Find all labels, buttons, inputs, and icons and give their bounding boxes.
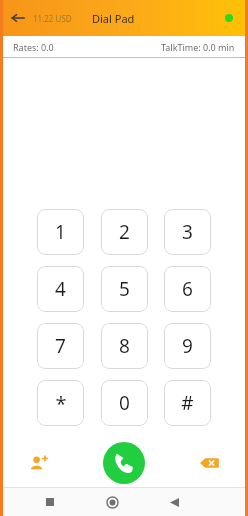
staticText: 0 xyxy=(119,390,130,416)
button[interactable]: 7 xyxy=(37,323,84,369)
button[interactable]: 9 xyxy=(164,323,211,369)
staticText: # xyxy=(181,390,194,416)
button[interactable]: Recents xyxy=(37,489,63,515)
staticText: 4 xyxy=(55,276,66,302)
button[interactable]: 0 xyxy=(101,380,148,426)
staticText: 5 xyxy=(119,276,130,302)
staticText: 6 xyxy=(182,276,193,302)
staticText: * xyxy=(55,390,67,417)
button[interactable]: 2 xyxy=(101,209,148,255)
button[interactable]: Back xyxy=(3,3,33,33)
staticText: 2 xyxy=(119,219,130,245)
button[interactable]: 5 xyxy=(101,266,148,312)
staticText: 7 xyxy=(55,333,66,359)
button[interactable]: Backspace xyxy=(189,442,231,484)
staticText: 3 xyxy=(182,219,193,245)
staticText: Rates: 0.0 xyxy=(13,41,54,53)
staticText: 11.22 USD xyxy=(33,13,72,24)
staticText: 1 xyxy=(55,219,66,245)
staticText: 8 xyxy=(119,333,130,359)
button[interactable]: 8 xyxy=(101,323,148,369)
button[interactable]: Call xyxy=(103,442,145,484)
button[interactable]: Connection status xyxy=(217,6,241,30)
button[interactable]: 1 xyxy=(37,209,84,255)
button[interactable]: # xyxy=(164,380,211,426)
button[interactable]: Back xyxy=(161,489,187,515)
staticText: Dial Pad xyxy=(92,11,135,26)
button[interactable]: 4 xyxy=(37,266,84,312)
button[interactable]: * xyxy=(37,380,84,426)
staticText: TalkTime: 0.0 min xyxy=(161,41,235,53)
staticText: 9 xyxy=(182,333,193,359)
button[interactable]: Add contact xyxy=(17,442,59,484)
button[interactable]: Home xyxy=(99,489,125,515)
button[interactable]: 3 xyxy=(164,209,211,255)
button[interactable]: 6 xyxy=(164,266,211,312)
